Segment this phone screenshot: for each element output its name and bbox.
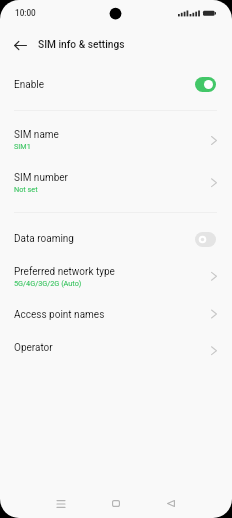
button[interactable]: Data roaming [0, 218, 232, 260]
staticText: Operator [14, 342, 53, 354]
button[interactable]: Recent apps [47, 490, 74, 517]
button[interactable]: Operator [0, 331, 232, 365]
staticText: 5G/4G/3G/2G (Auto) [14, 279, 82, 288]
staticText: SIM info & settings [38, 39, 125, 51]
button[interactable]: SIM name [0, 119, 232, 161]
staticText: Enable [14, 79, 44, 91]
staticText: Access point names [14, 309, 105, 321]
button[interactable]: Access point names [0, 298, 232, 332]
staticText: Preferred network type [14, 266, 115, 278]
staticText: 10:00 [15, 8, 36, 18]
button[interactable]: SIM number [0, 162, 232, 204]
button[interactable]: Back [157, 490, 184, 517]
staticText: Data roaming [14, 233, 74, 245]
button[interactable]: Enable [0, 61, 232, 108]
button[interactable]: Off [195, 232, 216, 247]
staticText: SIM number [14, 172, 68, 184]
staticText: SIM1 [14, 142, 31, 151]
button[interactable]: Preferred network type [0, 256, 232, 298]
button[interactable]: Back [7, 31, 34, 59]
staticText: Not set [14, 185, 38, 194]
staticText: SIM name [14, 129, 59, 141]
button[interactable]: Home [102, 490, 129, 517]
button[interactable]: On [195, 77, 216, 92]
